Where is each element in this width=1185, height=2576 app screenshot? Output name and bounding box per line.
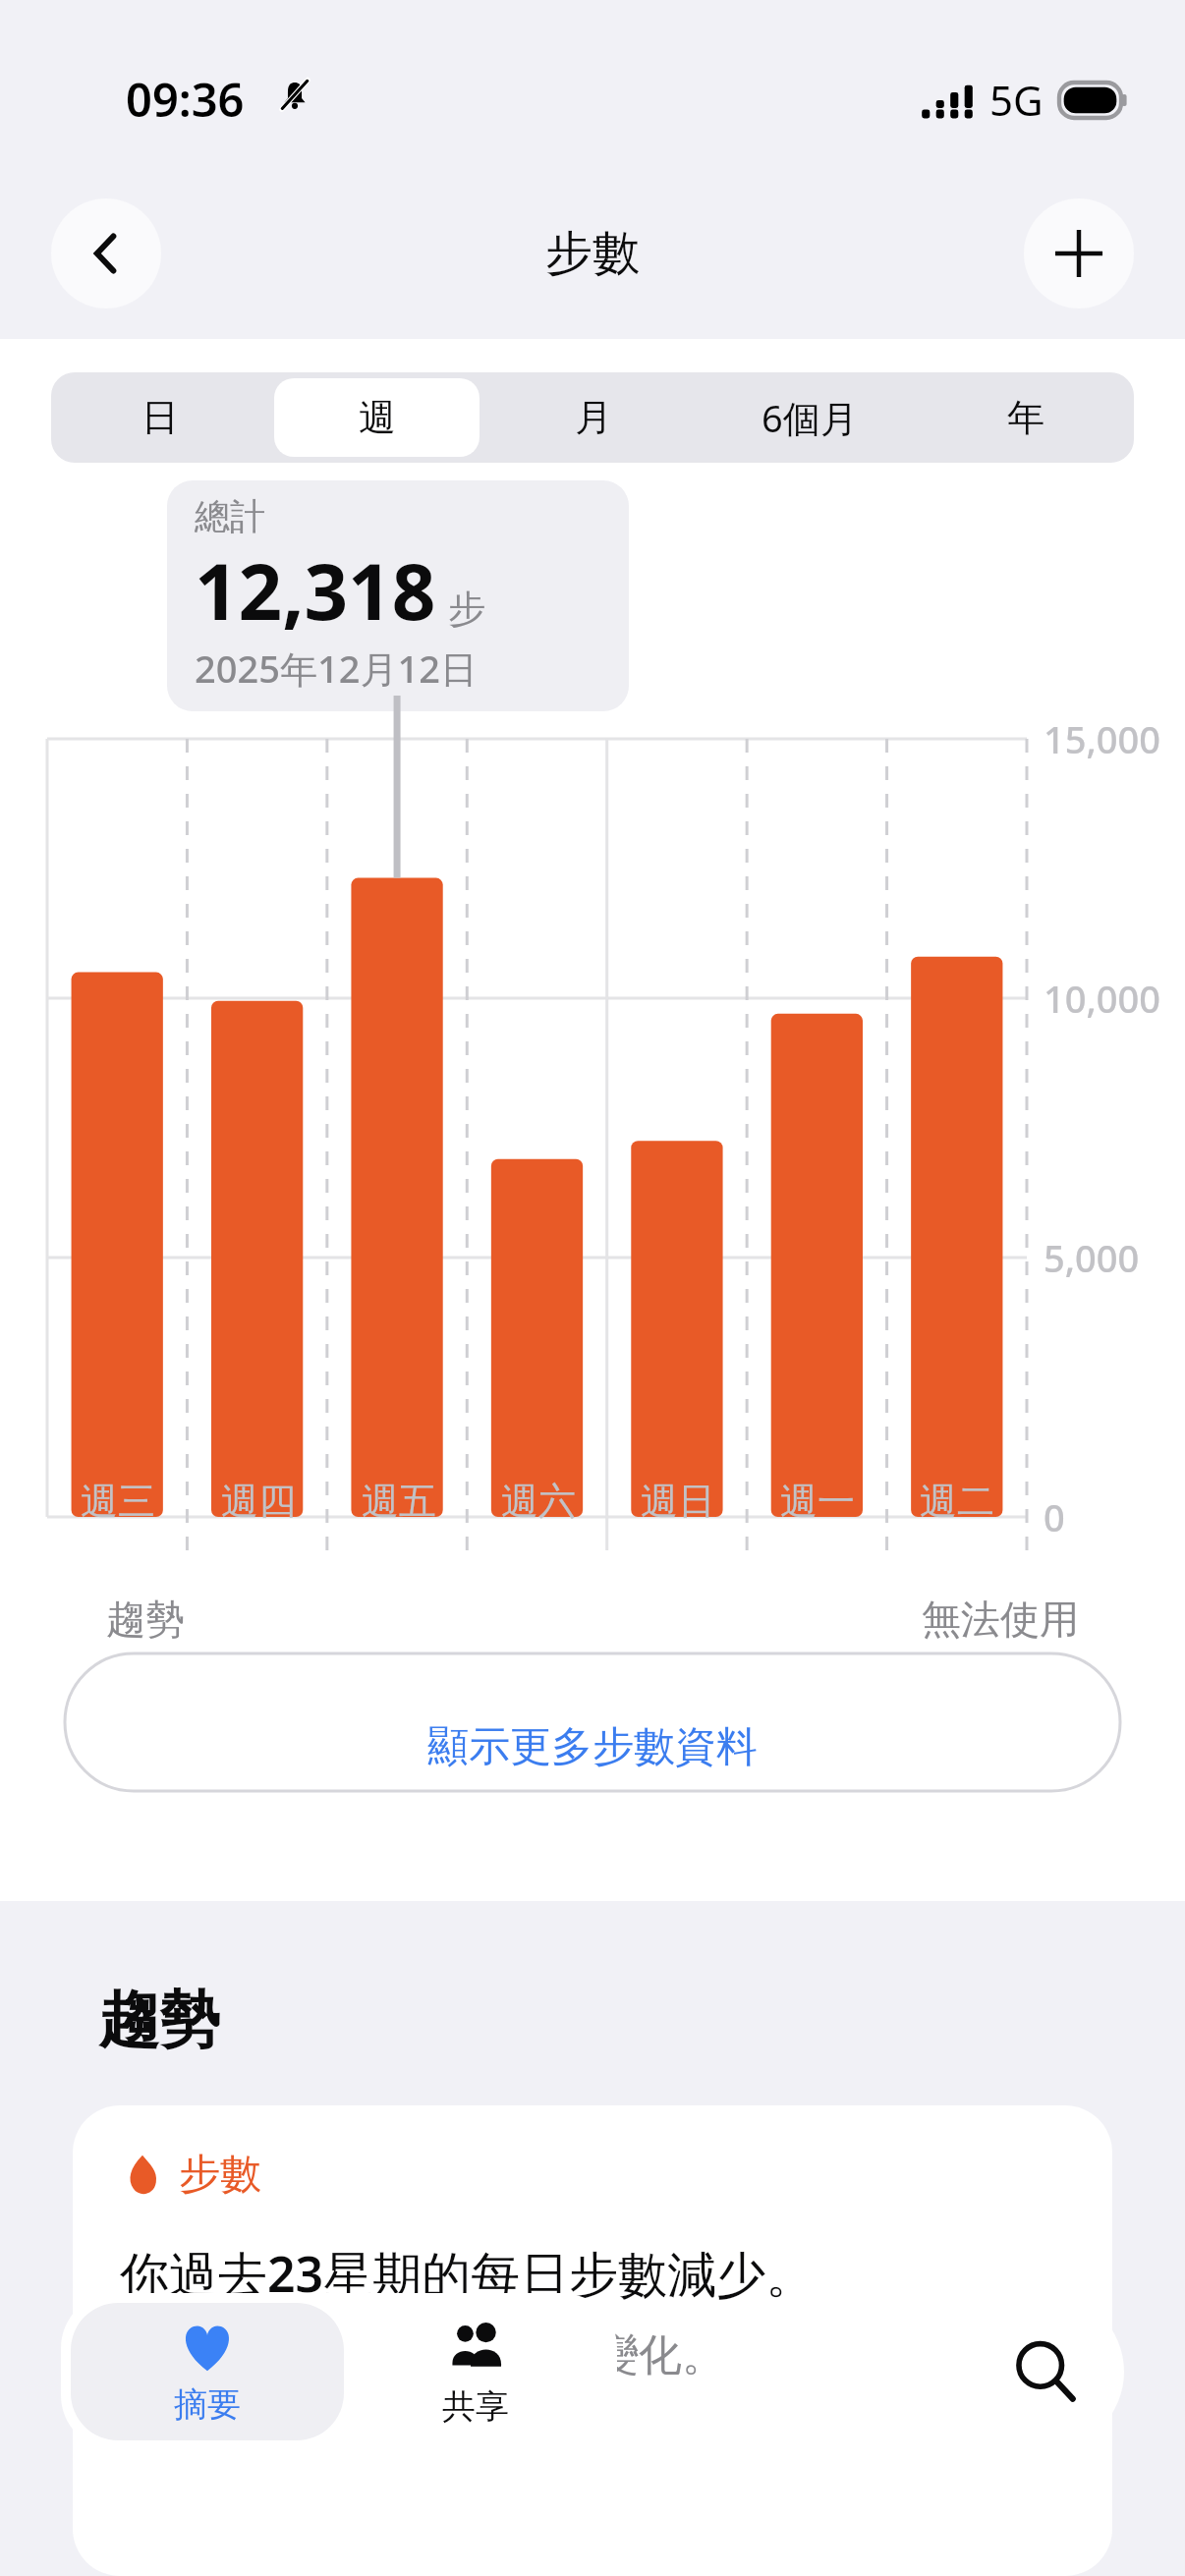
- staticText: 顯示更多步數資料: [427, 1721, 758, 1773]
- button[interactable]: 週: [274, 378, 480, 457]
- staticText: 2025年12月12日: [195, 643, 478, 694]
- staticText: 09:36: [126, 68, 245, 131]
- staticText: 你過去23星期的每日步數減少。: [120, 2240, 816, 2307]
- button[interactable]: Add: [1024, 198, 1134, 308]
- staticText: 週六: [501, 1478, 576, 1525]
- button[interactable]: Search: [967, 2293, 1124, 2450]
- button[interactable]: 6個月: [707, 378, 912, 457]
- staticText: 無法使用: [922, 1595, 1079, 1644]
- button[interactable]: 步數: [73, 2105, 1112, 2576]
- staticText: 週五: [362, 1478, 436, 1525]
- button[interactable]: 月: [491, 378, 696, 457]
- staticText: 年: [1007, 394, 1044, 441]
- staticText: 6個月: [762, 392, 858, 443]
- button[interactable]: 摘要: [71, 2303, 344, 2440]
- staticText: 週三: [81, 1478, 155, 1525]
- staticText: 12,318: [195, 538, 436, 643]
- staticText: 共享: [442, 2385, 509, 2428]
- staticText: 5G: [989, 72, 1044, 128]
- staticText: 0: [1044, 1491, 1065, 1542]
- staticText: 摘要: [174, 2383, 241, 2426]
- button[interactable]: 顯示更多步數資料: [0, 1721, 1185, 1773]
- staticText: 週: [359, 394, 396, 441]
- staticText: 長及期間步數預計會發生變化。: [120, 2328, 725, 2382]
- staticText: 15,000: [1044, 713, 1161, 764]
- button[interactable]: 日: [57, 378, 262, 457]
- staticText: 週二: [920, 1478, 994, 1525]
- button[interactable]: Back: [51, 198, 161, 308]
- staticText: 日: [141, 394, 179, 441]
- staticText: 趨勢: [106, 1595, 185, 1644]
- button[interactable]: 年: [924, 378, 1128, 457]
- staticText: 5,000: [1044, 1232, 1140, 1283]
- button[interactable]: 共享: [344, 2303, 607, 2440]
- staticText: 步數: [179, 2149, 261, 2201]
- staticText: 步數: [545, 224, 640, 283]
- staticText: 總計: [195, 494, 265, 538]
- staticText: 週日: [641, 1478, 715, 1525]
- staticText: 月: [575, 394, 612, 441]
- staticText: 10,000: [1044, 973, 1161, 1024]
- staticText: 週一: [780, 1478, 855, 1525]
- staticText: 趨勢: [98, 1982, 220, 2058]
- staticText: 步: [448, 586, 485, 633]
- button[interactable]: 趨勢: [65, 1550, 1120, 1688]
- staticText: 週四: [221, 1478, 296, 1525]
